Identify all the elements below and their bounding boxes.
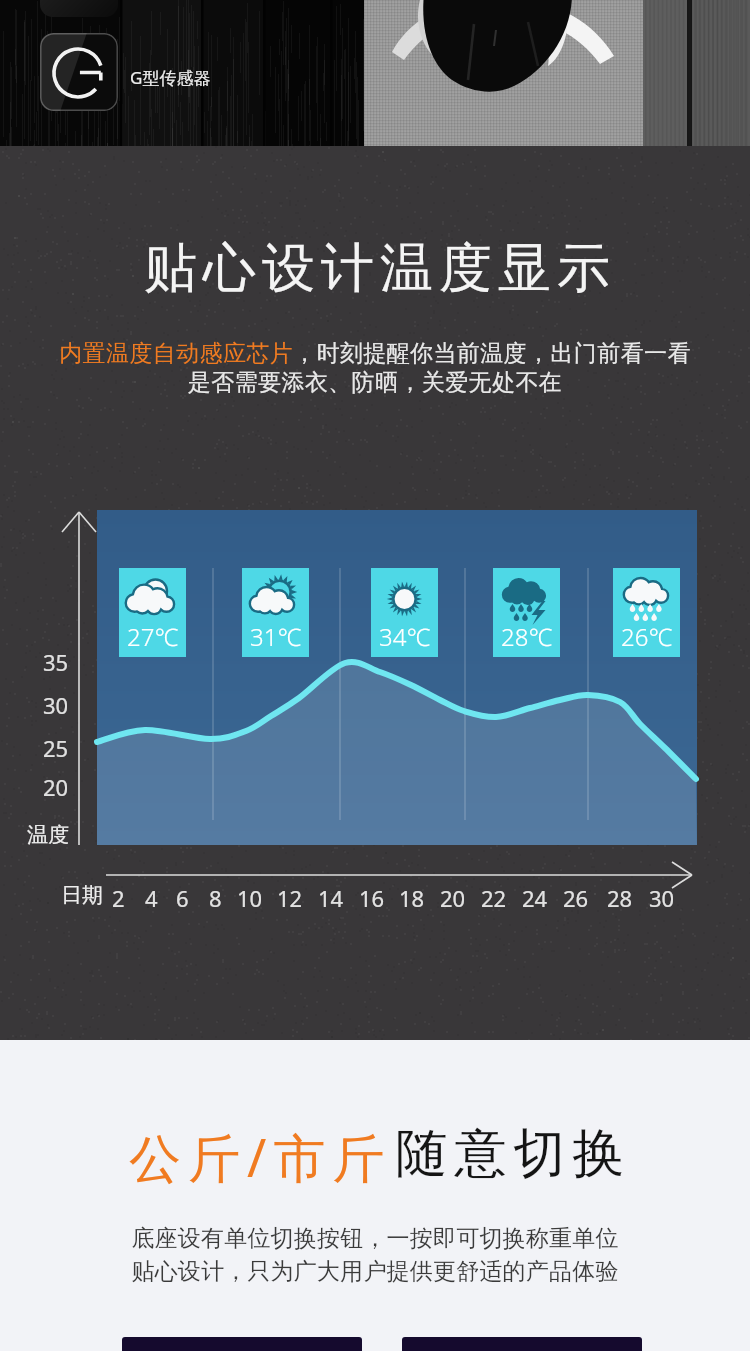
staticText: 8	[209, 883, 222, 913]
button[interactable]: 27℃	[119, 568, 186, 657]
staticText: 是否需要添衣、防晒，关爱无处不在	[0, 368, 750, 397]
button[interactable]: 28℃	[493, 568, 560, 657]
staticText: 22	[481, 883, 507, 913]
staticText: 26℃	[621, 620, 673, 653]
staticText: 随意切换	[392, 1121, 628, 1187]
staticText: 24	[522, 883, 548, 913]
staticText: 30	[43, 690, 69, 720]
staticText: 28℃	[501, 620, 553, 653]
staticText: 12	[277, 883, 303, 913]
staticText: 16	[359, 883, 385, 913]
staticText: ，时刻提醒你当前温度，出门前看一看	[293, 339, 691, 368]
button[interactable]: 31℃	[242, 568, 309, 657]
staticText: 31℃	[250, 620, 302, 653]
staticText: 20	[43, 772, 69, 802]
button[interactable]	[122, 1337, 362, 1351]
staticText: 公斤/市斤	[129, 1121, 392, 1192]
staticText: 14	[318, 883, 344, 913]
button[interactable]	[402, 1337, 642, 1351]
staticText: 25	[43, 733, 69, 763]
staticText: 20	[440, 883, 466, 913]
staticText: G型传感器	[130, 66, 211, 89]
staticText: 34℃	[379, 620, 431, 653]
staticText: 6	[176, 883, 189, 913]
staticText: 2	[112, 883, 125, 913]
staticText: 10	[237, 883, 263, 913]
staticText: 日期	[61, 882, 103, 908]
staticText: 30	[649, 883, 675, 913]
button[interactable]: 26℃	[613, 568, 680, 657]
staticText: 27℃	[127, 620, 179, 653]
button[interactable]: 34℃	[371, 568, 438, 657]
staticText: 贴心设计温度显示	[5, 235, 750, 302]
staticText: 4	[145, 883, 158, 913]
staticText: 内置温度自动感应芯片	[59, 339, 293, 368]
staticText: 底座设有单位切换按钮，一按即可切换称重单位	[0, 1224, 750, 1253]
staticText: 温度	[27, 822, 69, 848]
staticText: 28	[607, 883, 633, 913]
button[interactable]: G sensor	[40, 33, 118, 111]
staticText: 26	[563, 883, 589, 913]
staticText: 18	[399, 883, 425, 913]
staticText: 35	[43, 647, 69, 677]
staticText: 贴心设计，只为广大用户提供更舒适的产品体验	[0, 1257, 750, 1286]
